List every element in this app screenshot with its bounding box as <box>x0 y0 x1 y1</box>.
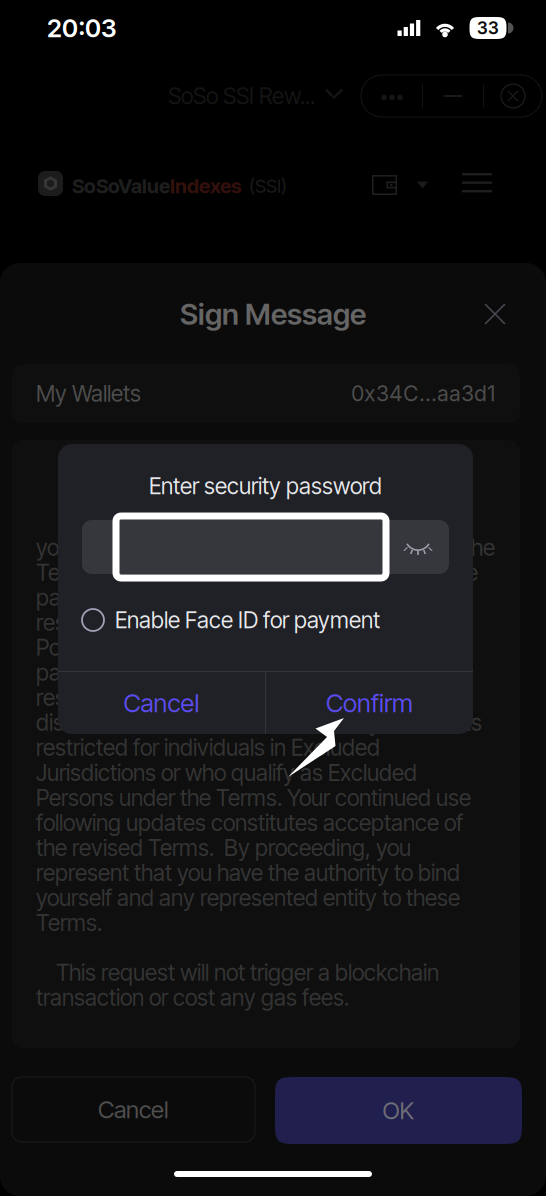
button[interactable]: More <box>361 76 422 116</box>
button[interactable]: Enable Face ID for payment <box>82 604 449 636</box>
staticText: 20:03 <box>47 13 117 43</box>
staticText: SoSoValue <box>72 174 170 198</box>
staticText: My Wallets <box>36 380 141 407</box>
button[interactable]: Cancel <box>12 1077 255 1142</box>
staticText: Cancel <box>98 1095 169 1124</box>
staticText: you acknowledge and agree to be bound by… <box>36 535 495 935</box>
staticText: ••• <box>379 85 403 106</box>
staticText: 0x34C...aa3d1 <box>351 381 496 406</box>
staticText: OK <box>382 1096 414 1125</box>
button[interactable]: Wallet <box>372 173 428 197</box>
button[interactable]: Confirm <box>266 672 473 734</box>
staticText: (SSI) <box>249 175 287 197</box>
staticText: Indexes <box>170 174 242 198</box>
staticText: Cancel <box>123 688 199 718</box>
staticText: 33 <box>477 17 499 38</box>
button[interactable]: My Wallets <box>12 364 520 423</box>
staticText: Enter security password <box>149 472 382 500</box>
staticText: Confirm <box>326 688 413 718</box>
button[interactable]: Minimise <box>423 76 483 116</box>
staticText: This request will not trigger a blockcha… <box>36 960 439 1010</box>
button[interactable]: Menu <box>462 173 492 192</box>
staticText: Sign Message <box>180 296 366 332</box>
button[interactable]: Close <box>472 291 518 337</box>
button[interactable]: Show password <box>403 539 433 556</box>
button[interactable]: OK <box>275 1077 522 1144</box>
staticText: Enable Face ID for payment <box>115 606 380 634</box>
button[interactable]: SoSo SSI Rew... <box>168 78 343 114</box>
button[interactable]: Cancel <box>58 672 265 734</box>
button[interactable]: Close <box>484 76 542 116</box>
staticText: SoSo SSI Rew... <box>168 82 315 110</box>
